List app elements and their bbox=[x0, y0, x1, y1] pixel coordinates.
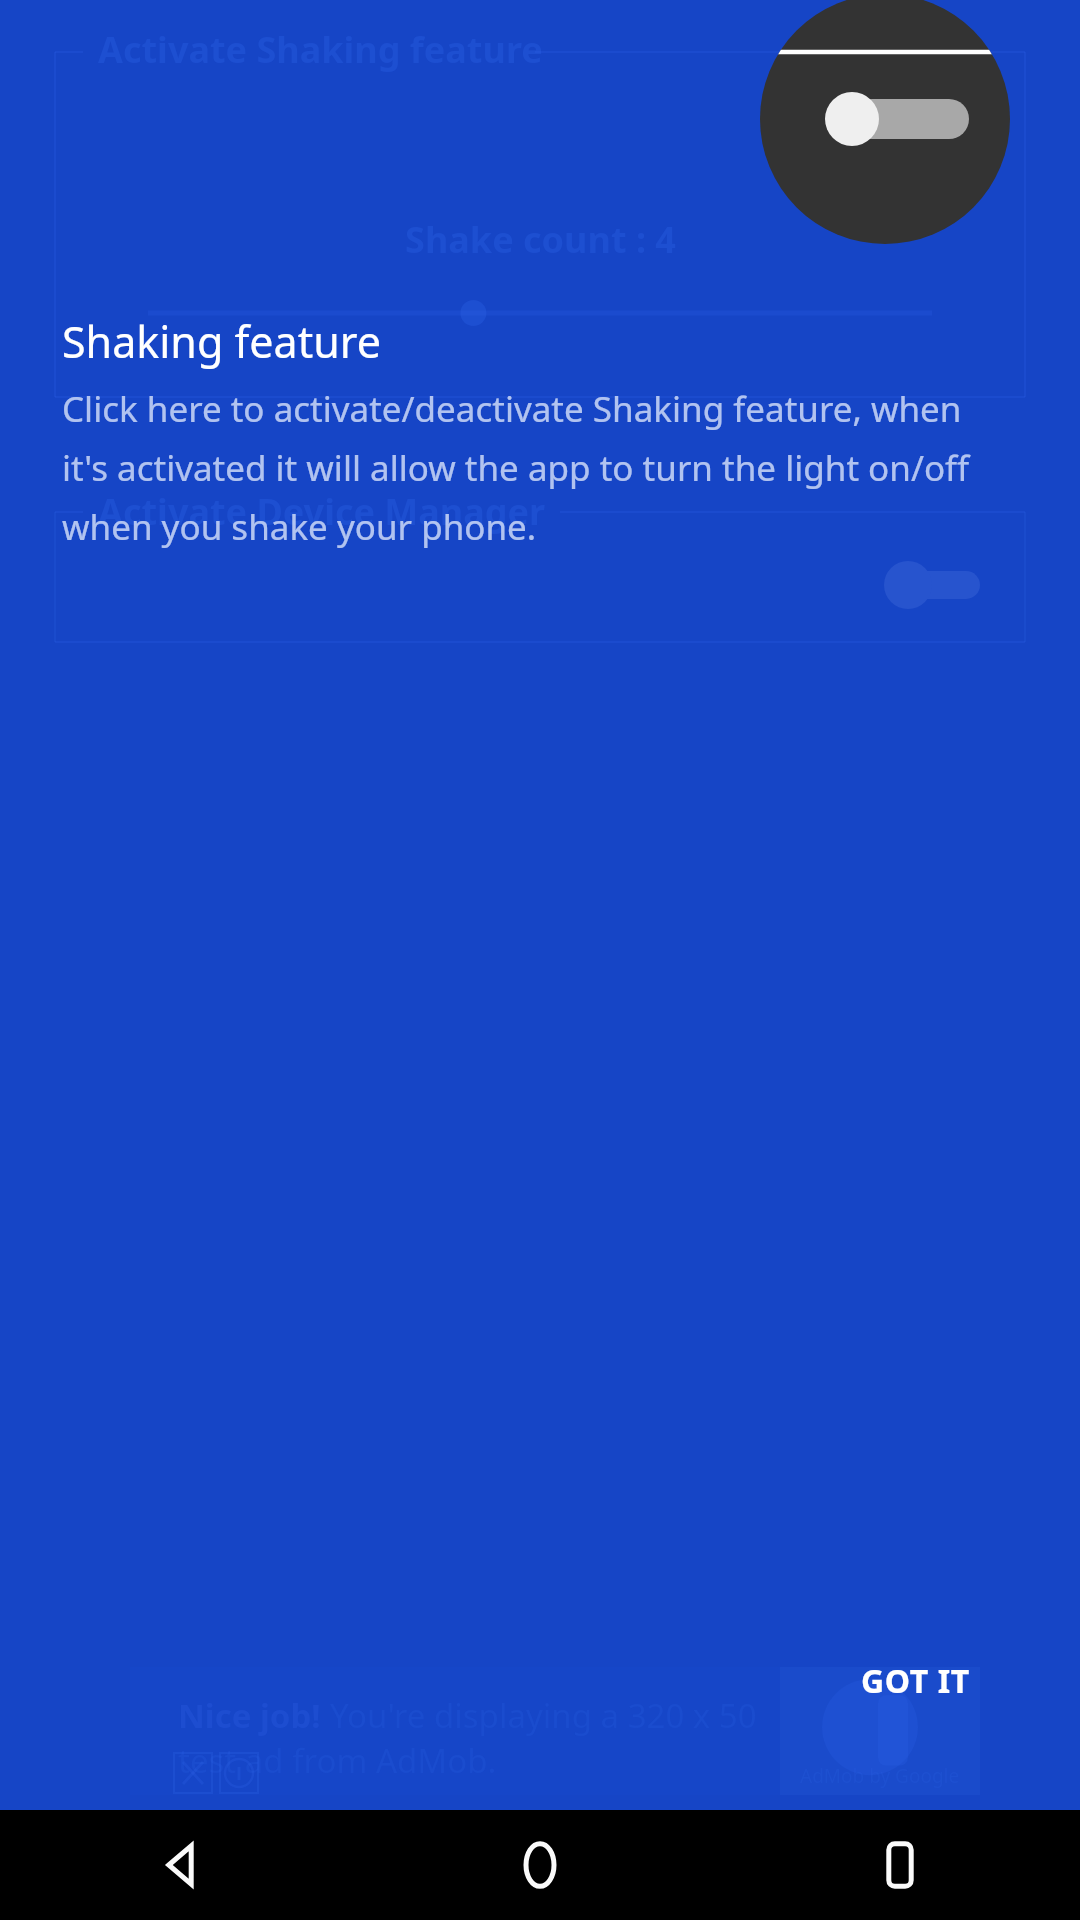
button[interactable]: Activate Shaking feature toggle bbox=[760, 0, 1010, 244]
staticText: Activate Shaking feature bbox=[98, 25, 543, 74]
button[interactable]: Home bbox=[360, 1810, 720, 1920]
button[interactable]: GOT IT bbox=[820, 1638, 1010, 1724]
button[interactable]: Recent apps bbox=[720, 1810, 1080, 1920]
staticText: Shake count : 4 bbox=[405, 215, 676, 264]
button[interactable]: Advertisement bbox=[130, 1667, 980, 1795]
staticText: GOT IT bbox=[861, 1659, 970, 1703]
staticText: Nice job! bbox=[178, 1693, 330, 1738]
staticText: Shaking feature bbox=[62, 312, 381, 371]
staticText: Click here to activate/deactivate Shakin… bbox=[62, 385, 1010, 551]
staticText: Activate Device Manager bbox=[98, 487, 546, 536]
button[interactable]: Activate Device Manager bbox=[884, 561, 980, 609]
button[interactable]: Back bbox=[0, 1810, 360, 1920]
